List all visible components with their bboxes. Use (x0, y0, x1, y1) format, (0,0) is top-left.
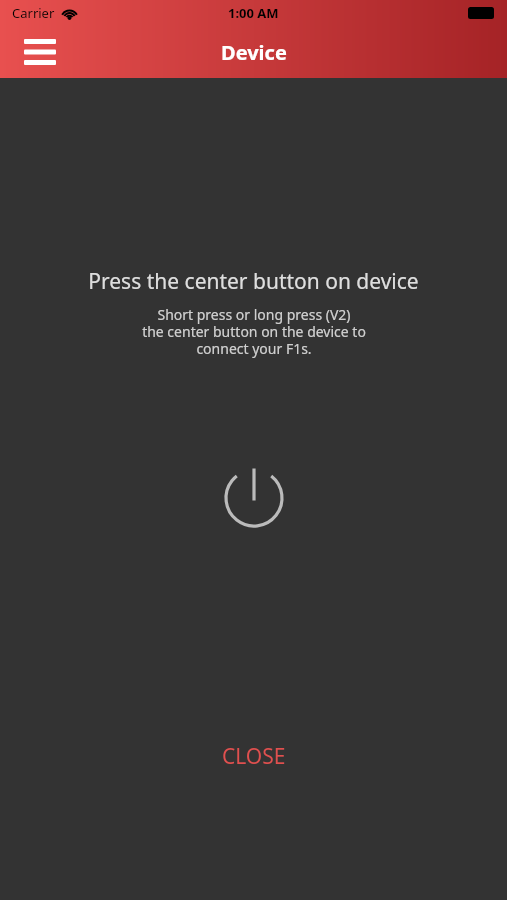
button[interactable]: CLOSE (194, 732, 314, 781)
button[interactable]: Power (218, 462, 290, 534)
staticText: Press the center button on device (88, 267, 419, 296)
staticText: 1:00 AM (228, 4, 279, 22)
staticText: Device (221, 39, 287, 66)
button[interactable]: Menu (14, 26, 66, 78)
staticText: Carrier (12, 4, 55, 22)
staticText: CLOSE (222, 742, 286, 771)
staticText: Short press or long press (V2) the cente… (142, 305, 366, 358)
